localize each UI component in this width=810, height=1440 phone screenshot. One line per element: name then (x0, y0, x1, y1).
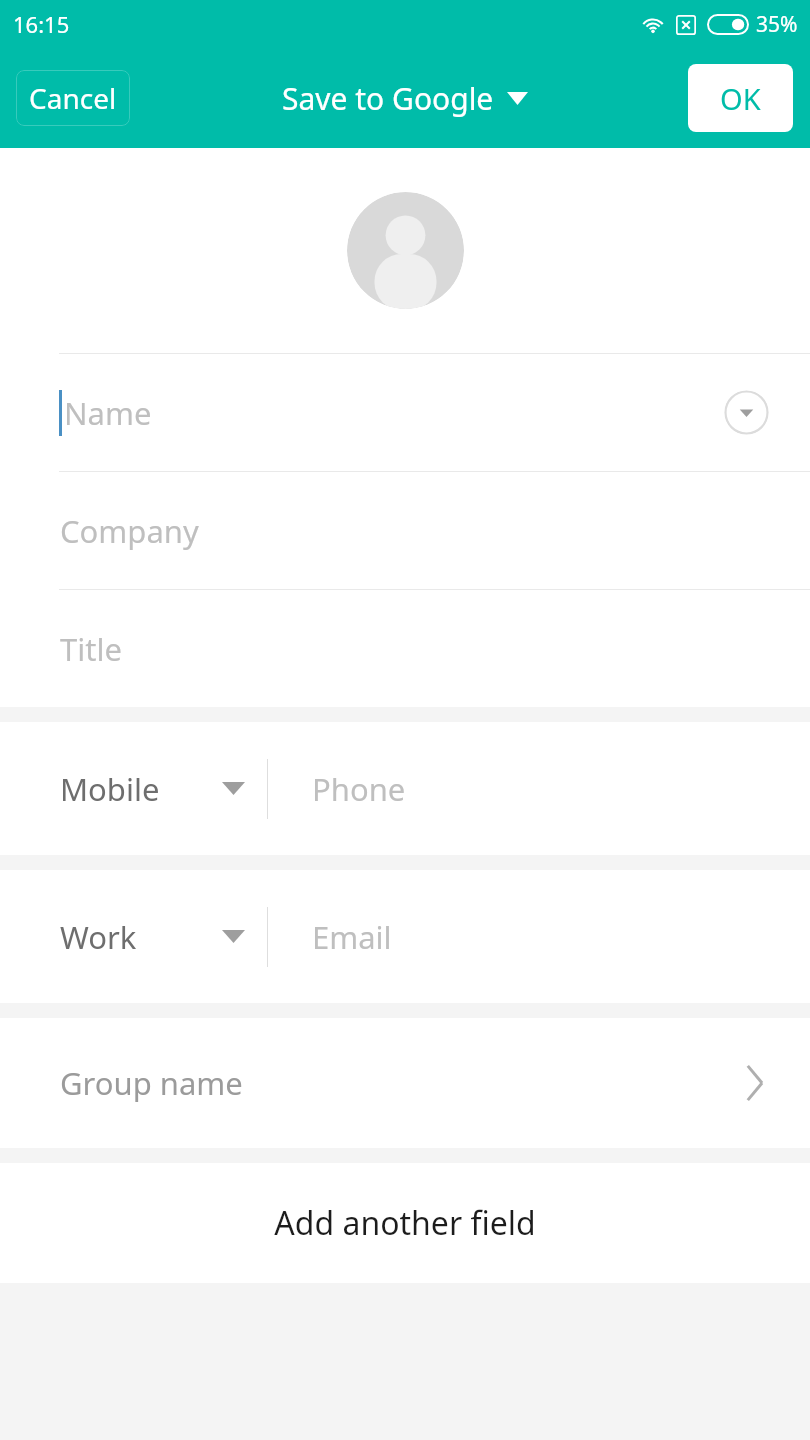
button[interactable]: Cancel (16, 70, 130, 126)
staticText: Phone (312, 768, 406, 810)
button[interactable]: Expand name fields (724, 390, 769, 435)
staticText: Title (60, 628, 122, 670)
button[interactable]: Group name (0, 1018, 810, 1148)
staticText: Mobile (60, 768, 160, 810)
staticText: Work (60, 916, 137, 958)
staticText: Group name (60, 1062, 243, 1104)
staticText: Save to Google (282, 78, 494, 119)
button[interactable]: Save to Google (274, 72, 536, 125)
staticText: Company (60, 510, 199, 552)
other: Choose group (744, 1064, 765, 1102)
staticText: OK (720, 79, 761, 118)
staticText: 16:15 (13, 9, 70, 39)
staticText: Name (64, 392, 152, 434)
button[interactable]: Work (0, 870, 810, 1003)
button[interactable]: OK (688, 64, 793, 132)
button[interactable]: Name (0, 354, 810, 471)
button[interactable]: Title (0, 590, 810, 707)
button[interactable]: Add photo (347, 192, 464, 309)
staticText: 35% (756, 10, 798, 39)
staticText: Cancel (29, 79, 117, 117)
button[interactable]: Company (0, 472, 810, 589)
staticText: Email (312, 916, 392, 958)
staticText: Add another field (274, 1201, 536, 1245)
button[interactable]: Mobile (0, 722, 810, 855)
button[interactable]: Add another field (0, 1163, 810, 1283)
